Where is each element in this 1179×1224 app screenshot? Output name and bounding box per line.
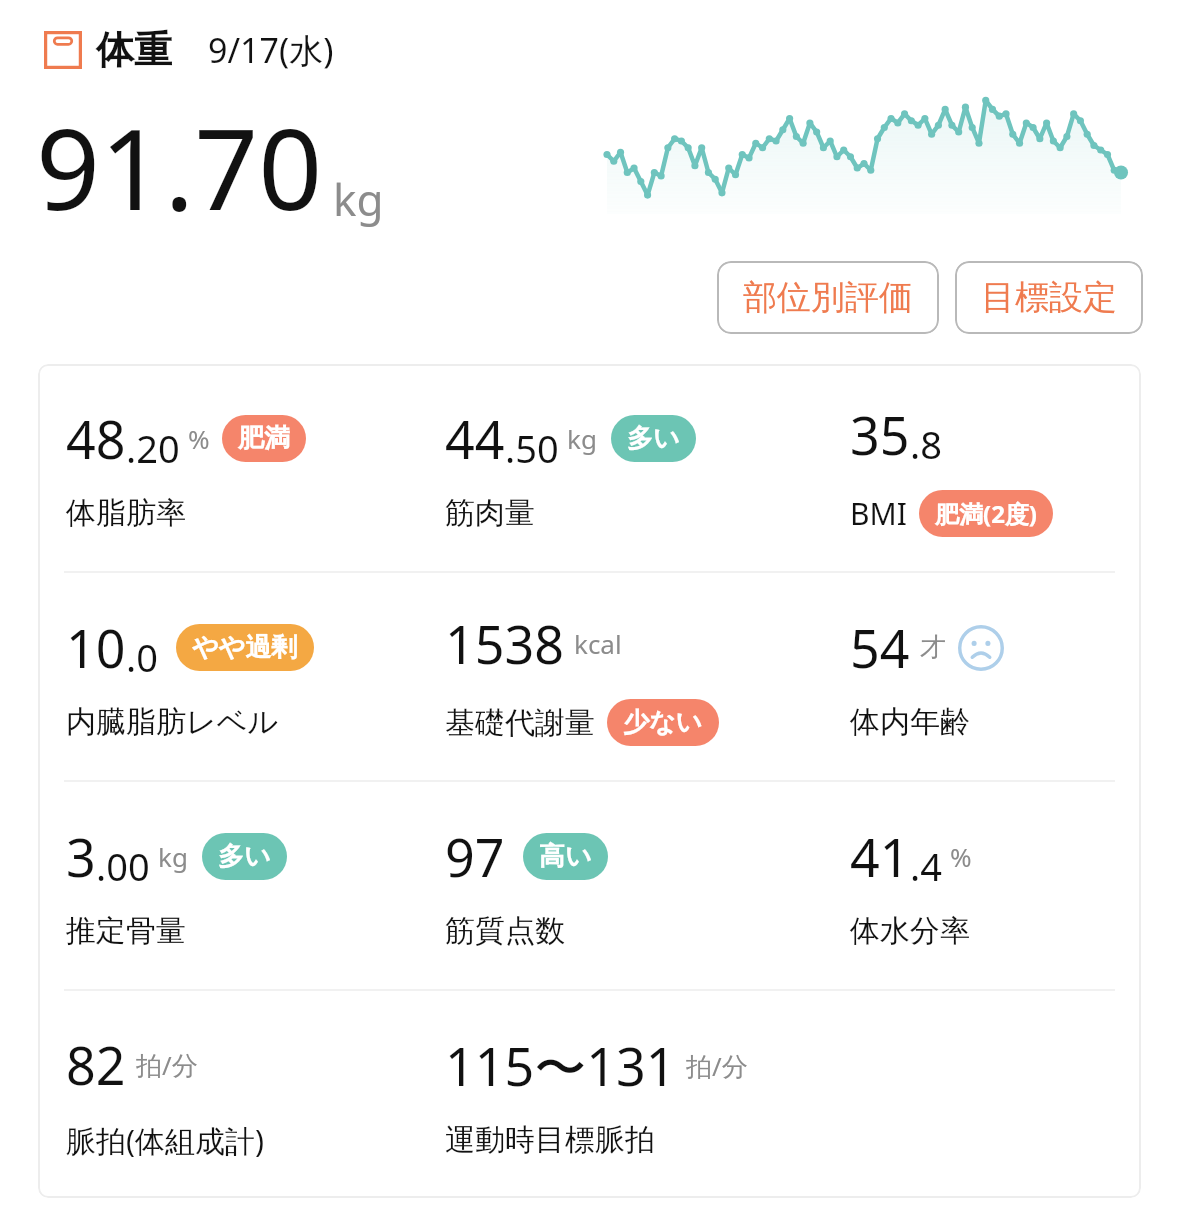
- staticText: 少ない: [623, 706, 703, 739]
- staticText: .50: [505, 422, 559, 474]
- staticText: 体脂肪率: [66, 494, 186, 532]
- staticText: 運動時目標脈拍: [445, 1121, 655, 1159]
- staticText: 多い: [627, 422, 680, 455]
- staticText: .0: [126, 631, 158, 683]
- staticText: 推定骨量: [66, 912, 186, 950]
- staticText: 拍/分: [136, 1047, 198, 1083]
- button[interactable]: 多い: [202, 833, 287, 880]
- staticText: 9/17(水): [208, 27, 334, 73]
- staticText: 48: [66, 403, 126, 474]
- staticText: 拍/分: [686, 1048, 748, 1084]
- button[interactable]: 肥満: [222, 415, 306, 462]
- staticText: 54: [850, 612, 910, 683]
- button[interactable]: 115〜131: [445, 1030, 850, 1159]
- staticText: 多い: [218, 840, 271, 873]
- button[interactable]: 高い: [523, 833, 608, 880]
- staticText: 高い: [539, 840, 592, 873]
- staticText: 115〜131: [445, 1030, 676, 1101]
- staticText: 才: [920, 631, 946, 664]
- staticText: 肥満(2度): [935, 497, 1037, 530]
- staticText: 部位別評価: [743, 276, 913, 319]
- button[interactable]: 97: [445, 821, 850, 950]
- staticText: %: [950, 839, 972, 874]
- staticText: 基礎代謝量: [445, 704, 595, 742]
- button[interactable]: 82: [66, 1029, 445, 1161]
- staticText: 97: [445, 821, 505, 892]
- staticText: BMI: [850, 493, 907, 534]
- button[interactable]: 41: [850, 821, 1133, 950]
- staticText: .8: [910, 418, 942, 470]
- staticText: 筋肉量: [445, 494, 535, 532]
- button[interactable]: 多い: [611, 415, 696, 462]
- staticText: 体水分率: [850, 912, 970, 950]
- staticText: 44: [445, 403, 505, 474]
- staticText: やや過剰: [192, 631, 298, 664]
- button[interactable]: 1538: [445, 608, 850, 746]
- staticText: kcal: [574, 626, 622, 661]
- staticText: kg: [333, 169, 384, 229]
- button[interactable]: 10: [66, 612, 445, 741]
- staticText: 1538: [445, 608, 564, 679]
- staticText: 91.70: [36, 90, 323, 243]
- staticText: 脈拍(体組成計): [66, 1120, 264, 1161]
- staticText: .4: [910, 840, 942, 892]
- button[interactable]: 48: [66, 403, 445, 532]
- staticText: 10: [66, 612, 126, 683]
- staticText: 3: [66, 821, 96, 892]
- button[interactable]: 54: [850, 612, 1133, 741]
- staticText: kg: [158, 839, 188, 874]
- button[interactable]: 肥満(2度): [919, 490, 1053, 537]
- staticText: 内臓脂肪レベル: [66, 703, 279, 741]
- button[interactable]: 3: [66, 821, 445, 950]
- staticText: 41: [850, 821, 910, 892]
- staticText: 82: [66, 1029, 126, 1100]
- staticText: %: [188, 421, 210, 456]
- button[interactable]: 少ない: [607, 699, 719, 746]
- button[interactable]: 35: [850, 399, 1133, 537]
- staticText: 肥満: [238, 422, 290, 455]
- staticText: 筋質点数: [445, 912, 565, 950]
- staticText: .00: [96, 840, 150, 892]
- staticText: 35: [850, 399, 910, 470]
- staticText: 目標設定: [981, 276, 1117, 319]
- staticText: .20: [126, 422, 180, 474]
- staticText: 体内年齢: [850, 703, 970, 741]
- button[interactable]: 部位別評価: [717, 261, 939, 334]
- button[interactable]: やや過剰: [176, 624, 314, 671]
- staticText: kg: [567, 421, 597, 456]
- button[interactable]: 44: [445, 403, 850, 532]
- staticText: 体重: [96, 26, 172, 74]
- button[interactable]: 目標設定: [955, 261, 1143, 334]
